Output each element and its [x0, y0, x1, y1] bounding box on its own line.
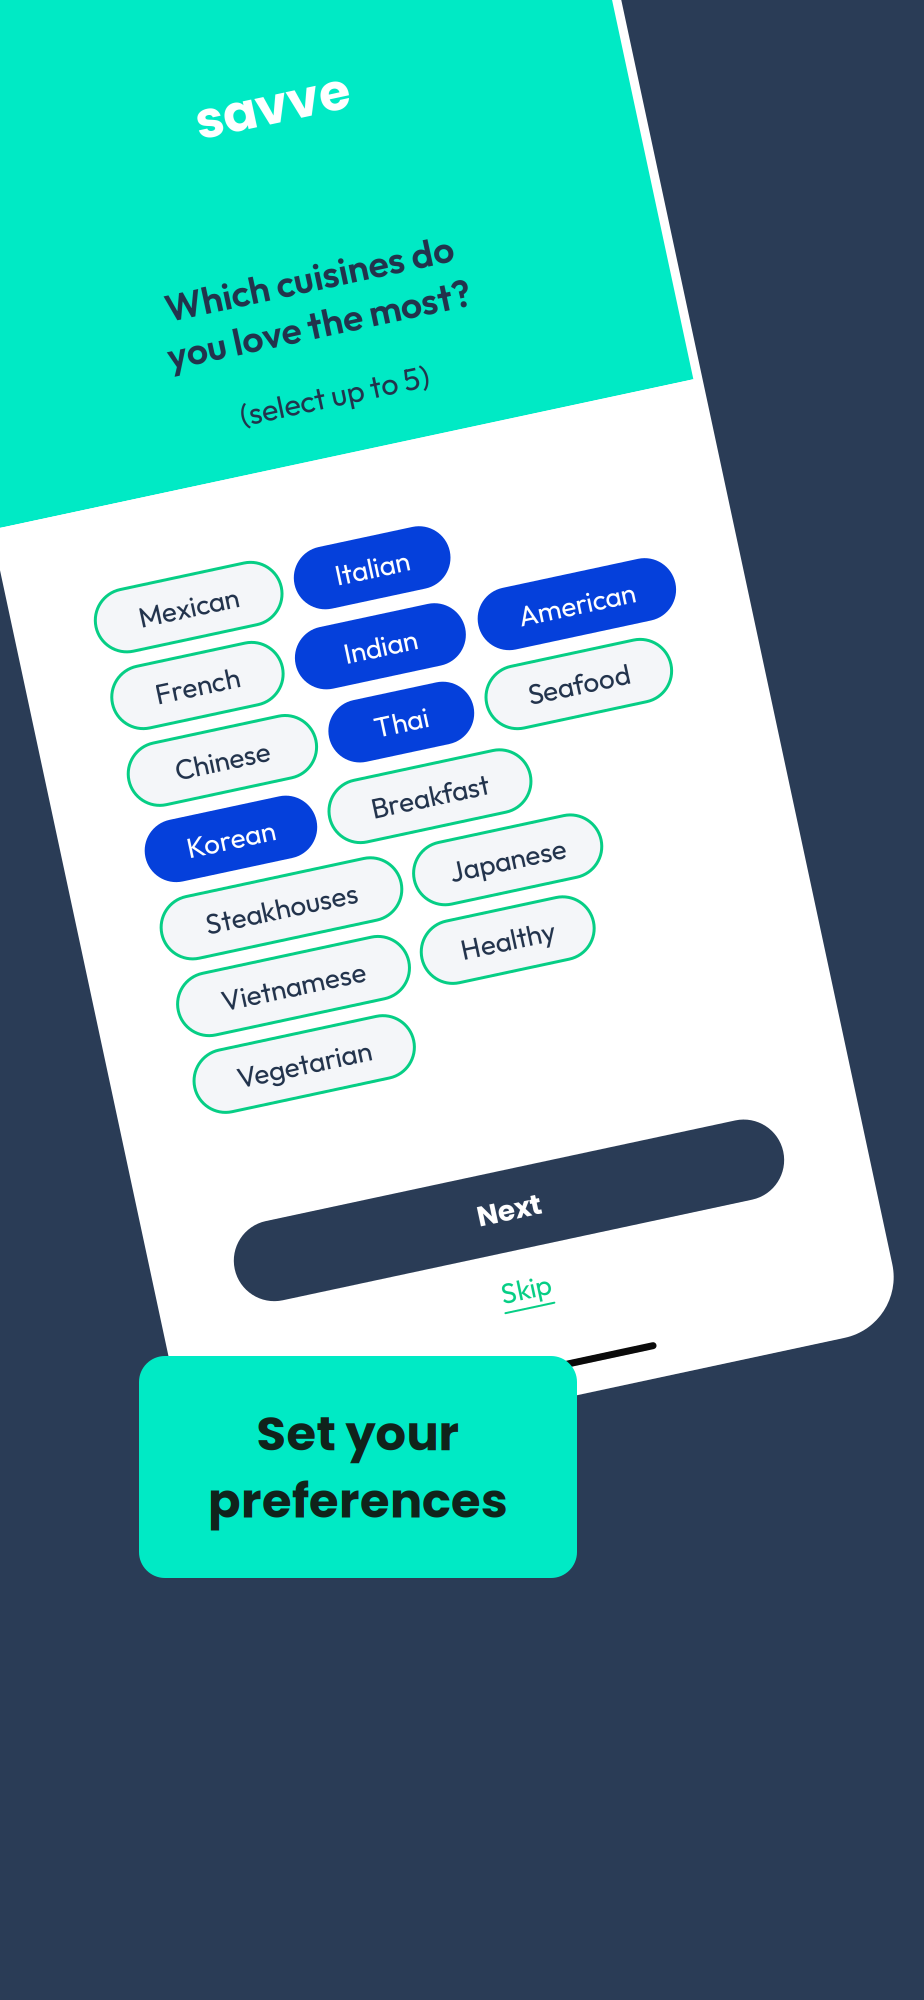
staticText: Japanese: [398, 863, 517, 898]
button[interactable]: American: [478, 613, 679, 676]
button[interactable]: Indian: [291, 613, 464, 676]
button[interactable]: Japanese: [362, 849, 553, 912]
button[interactable]: Vegetarian: [103, 1006, 327, 1069]
staticText: Breakfast: [335, 784, 455, 820]
button[interactable]: Breakfast: [292, 770, 497, 833]
staticText: Vegetarian: [147, 1020, 284, 1055]
button[interactable]: Vietnamese: [103, 927, 339, 990]
button[interactable]: Healthy: [353, 927, 528, 990]
button[interactable]: Korean: [103, 770, 278, 833]
staticText: savve: [306, 58, 463, 129]
staticText: Seafood: [512, 706, 616, 741]
staticText: Chinese: [151, 706, 248, 741]
staticText: Mexican: [147, 549, 249, 584]
staticText: Korean: [146, 784, 236, 820]
button[interactable]: French: [103, 613, 277, 676]
staticText: American: [519, 627, 638, 663]
staticText: Indian: [340, 627, 415, 663]
staticText: Set your: [256, 1400, 459, 1467]
staticText: preferences: [208, 1467, 508, 1534]
staticText: Vietnamese: [148, 941, 295, 977]
staticText: Which cuisines do: [238, 246, 532, 293]
staticText: you love the most?: [230, 293, 540, 340]
button[interactable]: Seafood: [469, 692, 658, 755]
button[interactable]: Italian: [306, 535, 465, 598]
staticText: Healthy: [392, 941, 488, 977]
button[interactable]: Steakhouses: [103, 849, 348, 912]
staticText: Italian: [348, 549, 424, 584]
staticText: French: [147, 627, 233, 663]
staticText: Steakhouses: [148, 863, 303, 898]
button[interactable]: Thai: [308, 692, 456, 755]
staticText: (select up to 5): [288, 370, 481, 409]
staticText: Thai: [354, 706, 409, 741]
button[interactable]: Mexican: [103, 535, 293, 598]
button[interactable]: Next: [104, 1183, 665, 1264]
button[interactable]: Chinese: [103, 692, 295, 755]
